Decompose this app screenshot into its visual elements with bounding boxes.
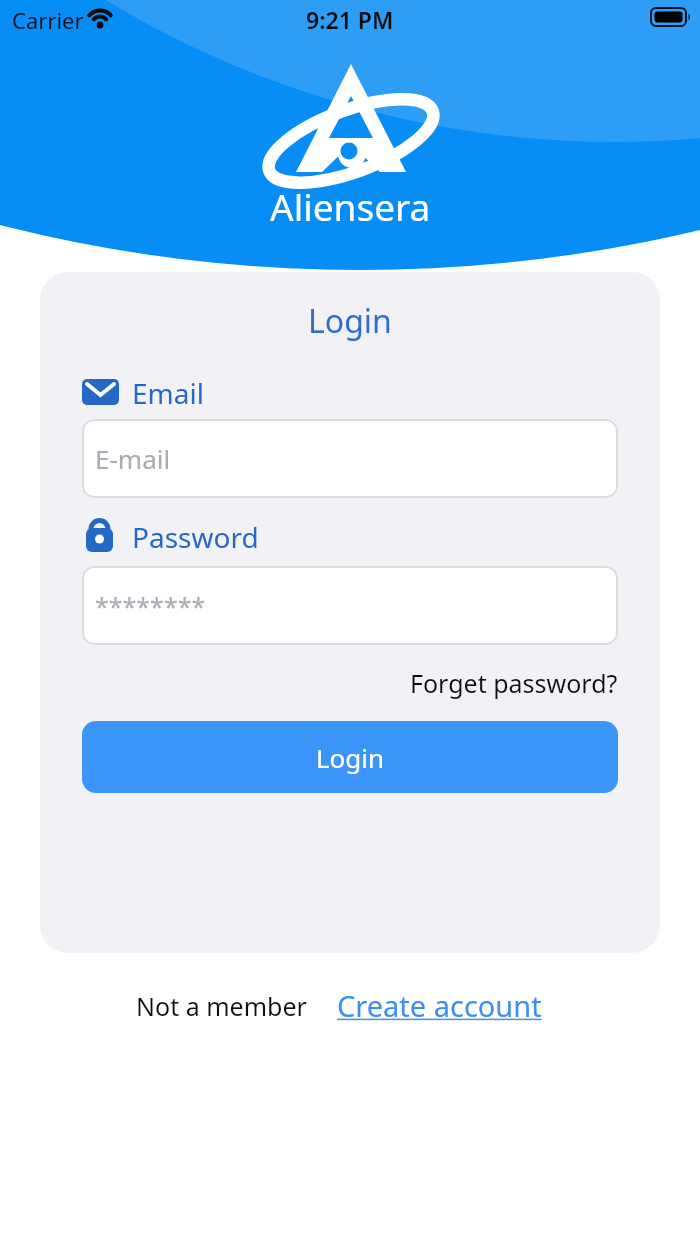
staticText: 9:21 PM: [306, 4, 394, 35]
staticText: Aliensera: [270, 181, 431, 231]
staticText: Not a member: [136, 989, 307, 1023]
button[interactable]: ********: [82, 566, 618, 645]
button[interactable]: Forget password?: [410, 666, 618, 700]
staticText: Login: [316, 740, 385, 775]
staticText: Login: [308, 299, 392, 343]
button[interactable]: E-mail: [82, 419, 618, 498]
staticText: Email: [132, 374, 204, 412]
staticText: E-mail: [95, 441, 171, 476]
button[interactable]: Login: [82, 721, 618, 793]
staticText: Password: [132, 518, 259, 556]
staticText: Carrier: [12, 5, 84, 35]
button[interactable]: Create account: [337, 986, 542, 1025]
staticText: ********: [95, 589, 206, 623]
